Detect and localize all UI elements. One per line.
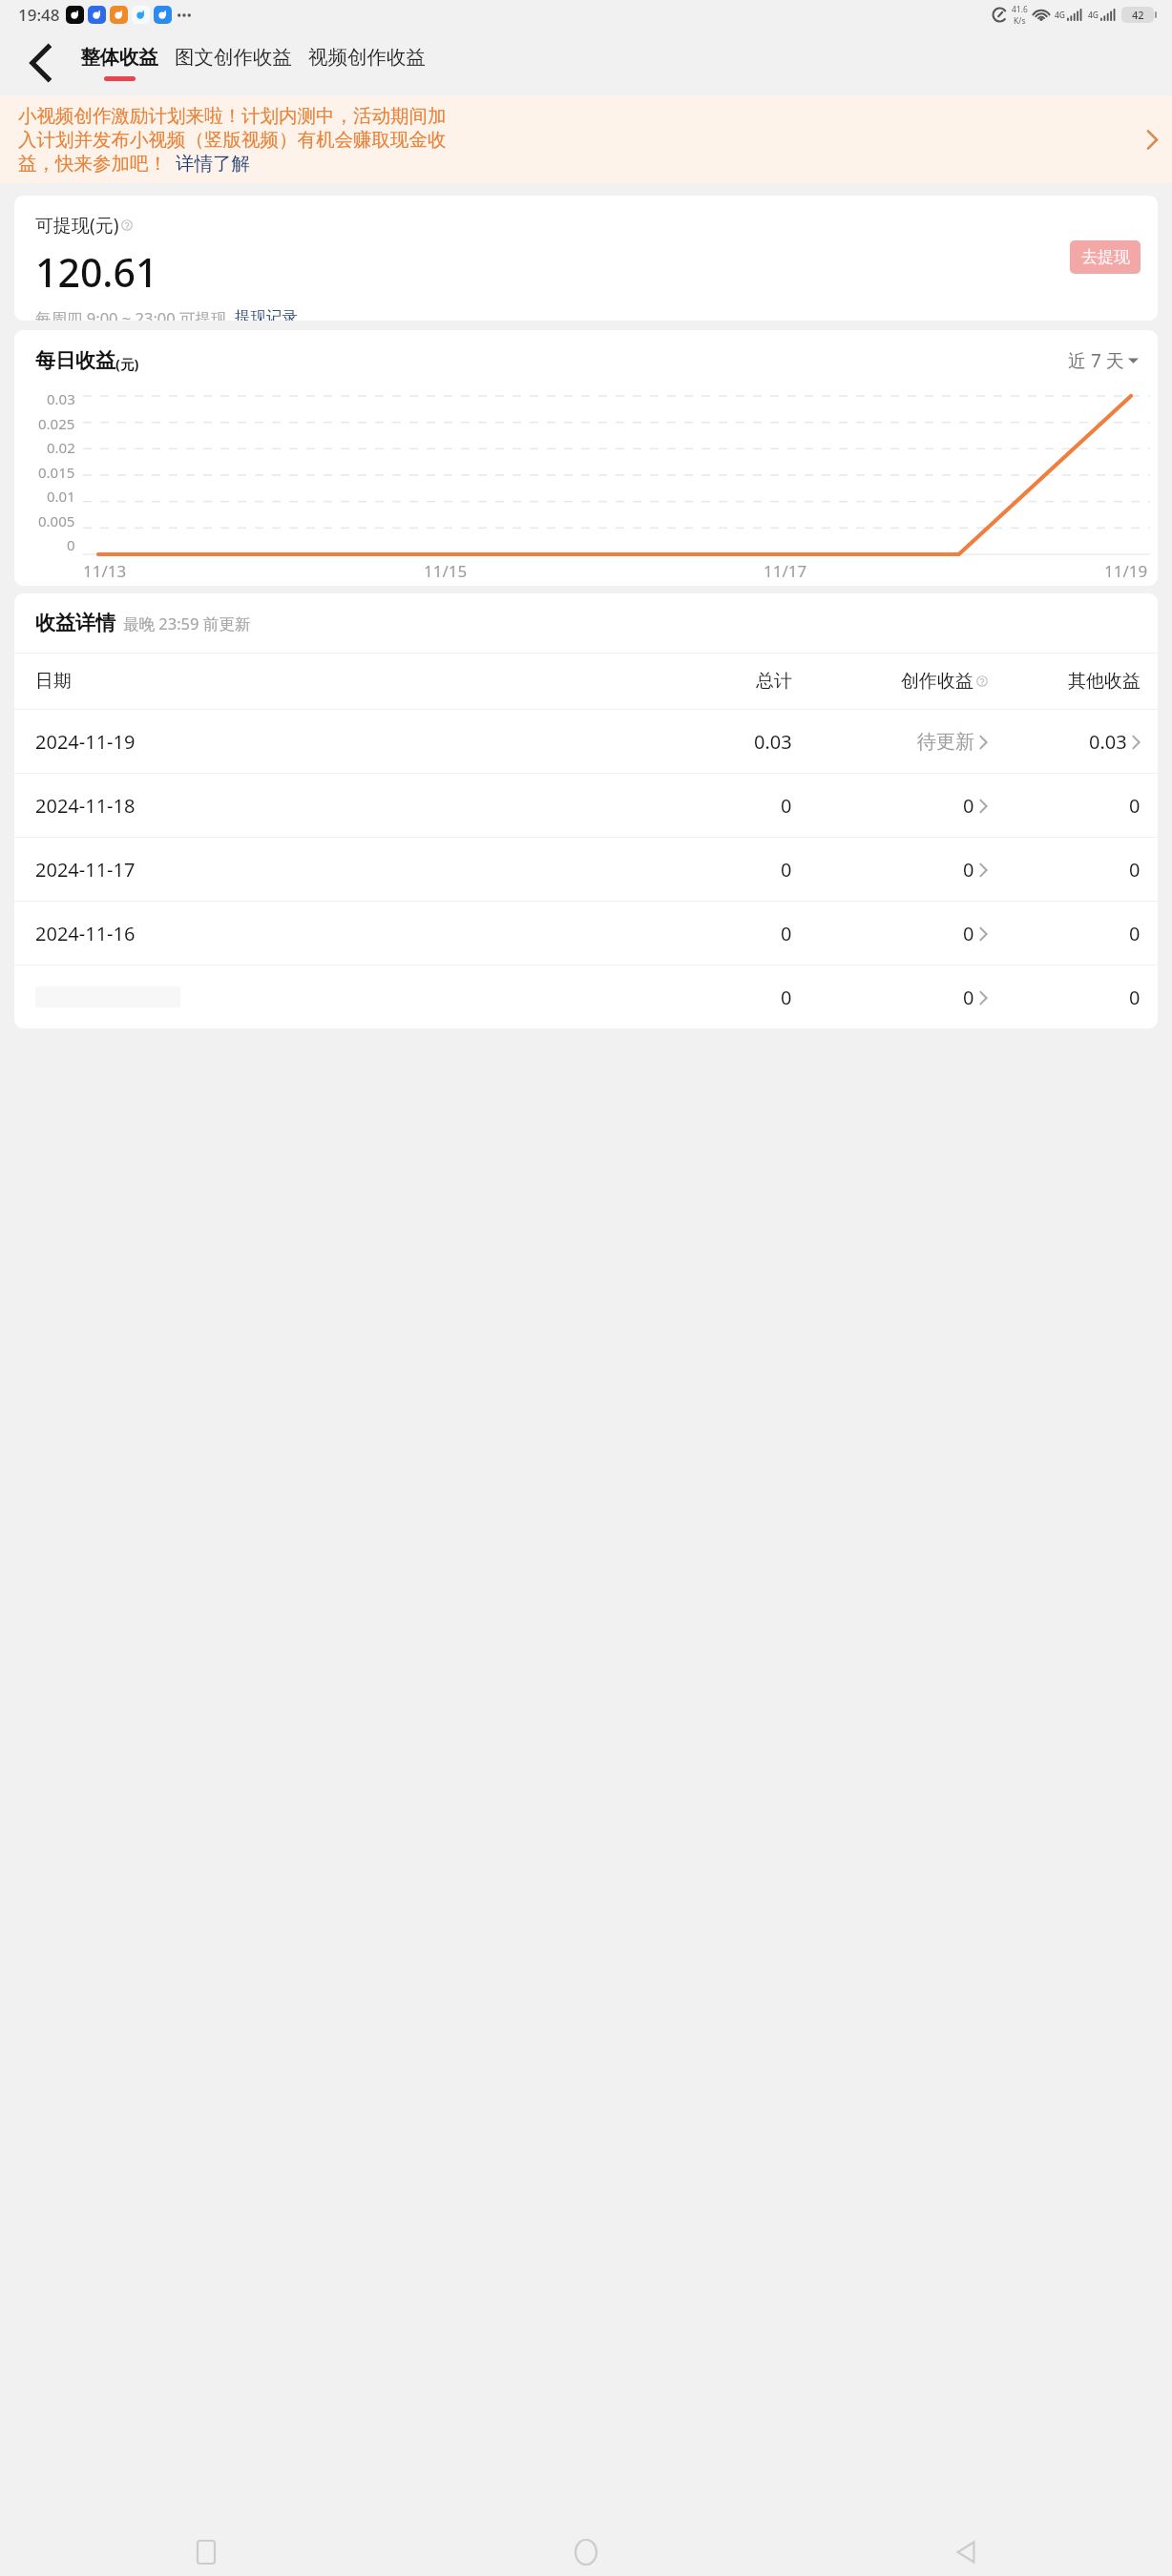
staticText: 0.01 [47,487,75,506]
staticText: 2024-11-18 [35,793,136,819]
staticText: 0.025 [38,414,75,433]
staticText: 0 [963,857,974,883]
staticText: 总计 [756,670,792,693]
button[interactable]: Back [13,35,69,91]
staticText: 11/17 [764,560,807,582]
button[interactable]: 2024-11-16 [14,902,1158,965]
staticText: 可提现(元) [35,213,119,238]
staticText: 详情了解 [176,152,250,176]
staticText: 2024-11-16 [35,921,136,946]
staticText: 整体收益 [80,45,158,70]
button[interactable]: 图文创作收益 [173,45,294,81]
staticText: 待更新 [917,730,974,754]
staticText: K/s [1014,15,1026,27]
button[interactable]: 视频创作收益 [306,45,428,81]
staticText: 图文创作收益 [175,45,292,70]
staticText: 0 [1129,793,1141,819]
button[interactable]: Back [939,2528,993,2576]
staticText: 0 [781,857,792,883]
staticText: 视频创作收益 [308,45,426,70]
staticText: 0 [963,985,974,1010]
staticText: 0.02 [47,438,75,457]
staticText: 0 [781,921,792,946]
staticText: 最晚 23:59 前更新 [123,613,251,634]
staticText: 近 7 天 [1068,348,1124,373]
staticText: 11/15 [424,560,468,582]
staticText: 2024-11-19 [35,729,136,755]
staticText: 2024-11-17 [35,857,136,883]
button[interactable]: 2024-11-19 [14,710,1158,773]
button[interactable]: 2024-11-18 [14,774,1158,837]
staticText: 益，快来参加吧！ [18,152,167,176]
staticText: 日期 [35,670,72,693]
staticText: 0 [1129,857,1141,883]
staticText: 120.61 [35,245,158,299]
staticText: 0.03 [47,389,75,408]
button[interactable]: Recents [179,2528,233,2576]
staticText: 0 [963,793,974,819]
staticText: 0 [1129,985,1141,1010]
button[interactable]: 0 [14,966,1158,1028]
button[interactable]: Home [559,2528,613,2576]
button[interactable]: 提现记录 [235,307,298,321]
staticText: 42 [1132,8,1144,22]
staticText: 其他收益 [1068,670,1141,693]
button[interactable]: 小视频创作激励计划来啦！计划内测中，活动期间加 [0,95,1172,183]
button[interactable]: 整体收益 [78,45,160,81]
staticText: 入计划并发布小视频（竖版视频）有机会赚取现金收 [18,128,447,152]
staticText: 4G [1088,10,1099,21]
staticText: 0.015 [38,463,75,482]
staticText: 收益详情 [35,611,115,635]
staticText: 0.005 [38,511,75,530]
staticText: 每周四 9:00 ~ 23:00 可提现 [35,307,227,321]
staticText: 11/19 [1104,560,1148,582]
button[interactable]: 近 7 天 [1068,348,1139,373]
staticText: 4G [1055,10,1066,21]
staticText: 去提现 [1081,247,1130,267]
staticText: 0 [963,921,974,946]
staticText: 41.6 [1012,4,1028,15]
staticText: (元) [115,354,139,373]
staticText: 19:48 [18,4,60,26]
staticText: 0.03 [754,729,792,755]
staticText: 创作收益 [901,670,973,693]
staticText: 0 [67,535,75,554]
staticText: 0.03 [1089,729,1127,755]
button[interactable]: 2024-11-17 [14,838,1158,901]
staticText: 0 [1129,921,1141,946]
staticText: 每日收益 [35,348,115,373]
button[interactable]: 去提现 [1070,240,1141,274]
staticText: 11/13 [83,560,127,582]
staticText: 0 [781,793,792,819]
staticText: 0 [781,985,792,1010]
staticText: 小视频创作激励计划来啦！计划内测中，活动期间加 [18,104,447,128]
